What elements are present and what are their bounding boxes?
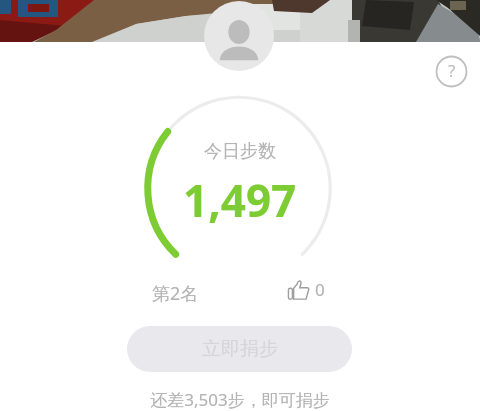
button[interactable]: Help	[435, 55, 468, 88]
button[interactable]: 第2名	[152, 281, 199, 306]
button[interactable]: Profile avatar	[204, 1, 274, 71]
staticText: 立即捐步	[202, 337, 278, 361]
button[interactable]: 立即捐步	[127, 326, 352, 372]
staticText: 1,497	[183, 170, 297, 230]
staticText: 第2名	[152, 281, 199, 306]
staticText: 0	[315, 278, 325, 301]
staticText: ?	[448, 59, 456, 82]
staticText: 还差3,503步，即可捐步	[150, 388, 330, 411]
button[interactable]: Like	[288, 278, 325, 301]
staticText: 今日步数	[204, 140, 276, 163]
